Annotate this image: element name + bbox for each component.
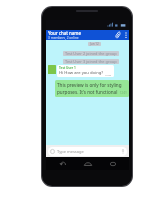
button[interactable]: Back: [53, 157, 71, 170]
staticText: purposes. It's not functional: [57, 89, 118, 95]
button[interactable]: More options: [122, 30, 129, 40]
staticText: 3 members, 2 online: [48, 36, 79, 40]
button[interactable]: Test User 2 joined the group: [65, 51, 117, 56]
button[interactable]: Recents: [104, 157, 122, 170]
staticText: Type message: [57, 149, 84, 154]
button[interactable]: Attach: [113, 30, 122, 40]
staticText: 12:01: [120, 91, 127, 95]
staticText: Test User 1: [59, 66, 76, 70]
button[interactable]: Home: [79, 157, 97, 170]
button[interactable]: Test User 1: [59, 66, 112, 76]
button[interactable]: This preview is only for styling: [57, 82, 127, 95]
staticText: Jun 12: [90, 42, 99, 46]
staticText: Your chat name: [48, 30, 81, 36]
staticText: Hi How are you doing?: [59, 70, 104, 76]
staticText: Test User 3 joined the group: [65, 59, 117, 64]
staticText: This preview is only for styling: [57, 82, 122, 88]
staticText: Test User 2 joined the group: [65, 51, 117, 56]
button[interactable]: Type message: [48, 147, 127, 156]
button[interactable]: Test User 3 joined the group: [65, 59, 117, 64]
staticText: 12:00: [105, 73, 112, 76]
